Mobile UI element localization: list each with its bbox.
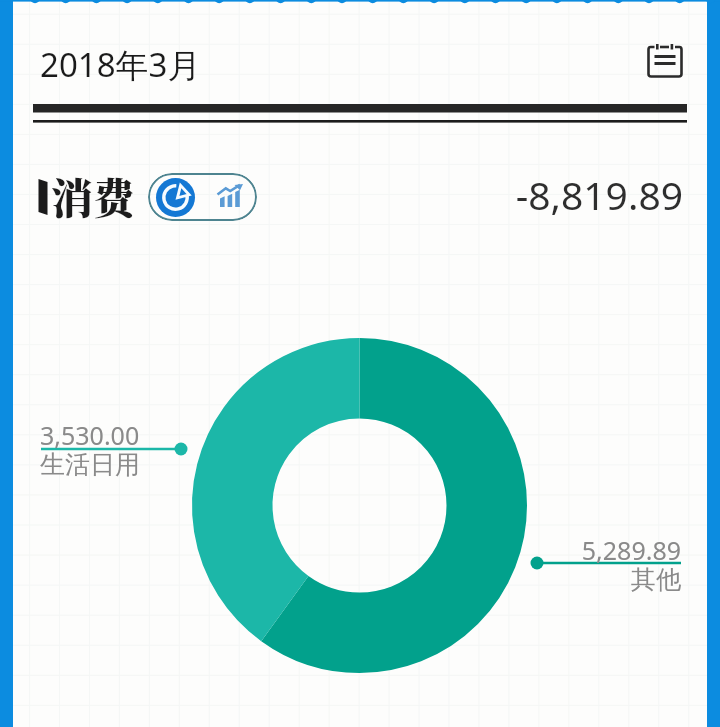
staticText: -8,819.89 — [423, 168, 683, 221]
staticText: 2018年3月 — [40, 42, 201, 87]
staticText: 生活日用 — [40, 449, 200, 480]
staticText: 消费 — [51, 166, 136, 226]
staticText: 其他 — [521, 564, 681, 595]
button[interactable]: Pie chart view — [148, 173, 202, 221]
staticText: 5,289.89 — [521, 533, 681, 567]
button[interactable]: Bar chart view — [202, 173, 257, 221]
staticText: 3,530.00 — [40, 418, 200, 452]
button[interactable]: Calendar notes — [637, 33, 693, 89]
button[interactable]: 2018年3月 — [40, 42, 201, 87]
